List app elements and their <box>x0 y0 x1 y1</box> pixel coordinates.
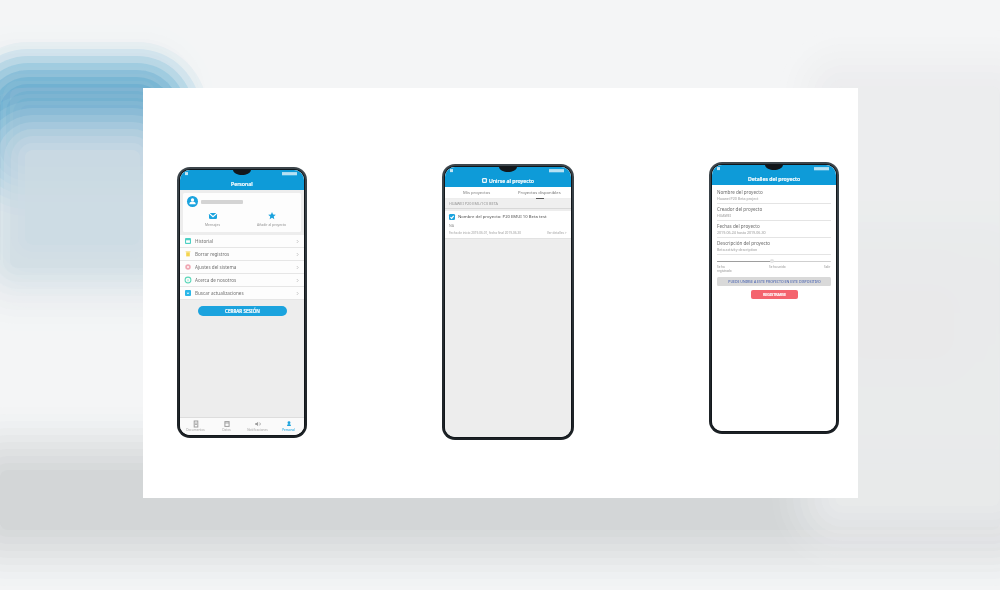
staticText: Nombre del proyecto <box>717 189 763 195</box>
staticText: Se ha registrado <box>717 265 732 273</box>
other: Mensajes <box>209 212 217 220</box>
staticText: CERRAR SESIÓN <box>225 308 260 314</box>
button[interactable]: PUEDE UNIRSE A ESTE PROYECTO EN ESTE DIS… <box>717 277 831 286</box>
staticText: PUEDE UNIRSE A ESTE PROYECTO EN ESTE DIS… <box>728 279 821 284</box>
staticText: Proyectos disponibles <box>518 190 561 196</box>
staticText: 2019-06-24 hasta 2019-06-30 <box>717 230 766 235</box>
staticText: REGISTRARSE <box>763 292 787 297</box>
staticText: Fechas del proyecto <box>717 223 760 229</box>
other: Documentos <box>193 421 199 427</box>
staticText: Borrar registros <box>195 251 230 257</box>
button[interactable]: Historial <box>180 235 304 247</box>
staticText: Descripción del proyecto <box>717 240 771 246</box>
staticText: Documentos <box>186 428 205 432</box>
staticText: HUAWEI P20 EML/1C0 BETA <box>449 201 498 206</box>
other: Notificaciones <box>255 421 261 427</box>
button[interactable]: Mensajes <box>183 211 242 228</box>
button[interactable]: Borrar registros <box>180 248 304 260</box>
button[interactable]: Datos <box>211 418 242 435</box>
staticText: Historial <box>195 238 214 244</box>
staticText: Se ha unido <box>769 265 786 269</box>
other: Añadir al proyecto <box>268 212 276 220</box>
staticText: Detalles del proyecto <box>748 175 801 182</box>
staticText: Huawei P20 Beta project <box>717 196 759 201</box>
staticText: Ver detalles > <box>547 231 567 235</box>
staticText: Datos <box>222 428 231 432</box>
staticText: Beta activity description <box>717 247 758 252</box>
button[interactable]: Proyectos disponibles <box>508 187 571 198</box>
button[interactable]: REGISTRARSE <box>751 290 798 299</box>
button[interactable]: Nombre del proyecto: P20 EMUI 10 Beta te… <box>445 211 571 238</box>
staticText: Creador del proyecto <box>717 206 763 212</box>
button[interactable]: Personal <box>273 418 304 435</box>
other: Datos <box>224 421 230 427</box>
button[interactable]: Añadir al proyecto <box>242 211 301 228</box>
button[interactable]: Ajustes del sistema <box>180 261 304 273</box>
staticText: Personal <box>231 180 253 187</box>
staticText: Buscar actualizaciones <box>195 290 244 296</box>
staticText: Ajustes del sistema <box>195 264 237 270</box>
staticText: Nombre del proyecto: P20 EMUI 10 Beta te… <box>458 214 547 220</box>
button[interactable]: Buscar actualizaciones <box>180 287 304 299</box>
staticText: Mis proyectos <box>463 190 491 196</box>
staticText: Salir <box>824 265 831 269</box>
other: Personal <box>286 421 292 427</box>
staticText: Añadir al proyecto <box>257 222 287 227</box>
button[interactable]: Documentos <box>180 418 211 435</box>
staticText: Personal <box>282 428 295 432</box>
button[interactable]: Notificaciones <box>242 418 273 435</box>
staticText: Notificaciones <box>247 428 268 432</box>
staticText: Fecha de inicio 2019-06-01, fecha final … <box>449 231 521 235</box>
button[interactable]: CERRAR SESIÓN <box>198 306 287 316</box>
staticText: NA <box>449 223 455 228</box>
staticText: Mensajes <box>205 222 221 227</box>
staticText: Unirse al proyecto <box>489 177 535 184</box>
staticText: HUAWEI <box>717 213 731 218</box>
button[interactable]: Acerca de nosotros <box>180 274 304 286</box>
button[interactable]: Mis proyectos <box>445 187 508 198</box>
staticText: Acerca de nosotros <box>195 277 237 283</box>
